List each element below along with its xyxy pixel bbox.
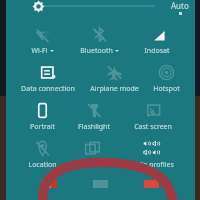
staticText: Flashlight [78, 122, 110, 132]
staticText: Data connection [21, 84, 75, 94]
button[interactable]: Airplane mode [90, 60, 139, 95]
staticText: Auto [171, 0, 189, 11]
button[interactable]: HotKnot [78, 136, 106, 171]
staticText: Location [28, 160, 57, 170]
staticText: Cast screen [134, 122, 172, 132]
staticText: Indosat [144, 46, 170, 56]
staticText: HotKnot [78, 160, 106, 170]
button[interactable]: Audio profiles [128, 136, 174, 171]
button[interactable]: Wi-Fi [31, 22, 54, 57]
button[interactable]: Hotspot [153, 60, 180, 95]
staticText: Airplane mode [90, 84, 139, 94]
button[interactable]: Indosat [144, 22, 170, 57]
button[interactable]: Battery saver [144, 180, 159, 188]
button[interactable]: Cast screen [134, 98, 172, 133]
button[interactable]: Brightness [32, 0, 45, 13]
button[interactable]: Flashlight [78, 98, 110, 133]
button[interactable]: Data connection [21, 60, 75, 95]
staticText: Portrait [30, 122, 55, 132]
button[interactable]: Bluetooth [80, 22, 119, 57]
staticText: Audio profiles [128, 160, 174, 170]
staticText: Wi-Fi [31, 46, 48, 56]
button[interactable]: Portrait [30, 98, 55, 133]
button[interactable]: Auto [171, 0, 189, 15]
button[interactable]: Screenshot [42, 180, 57, 188]
button[interactable]: Location [28, 136, 57, 171]
staticText: Hotspot [153, 84, 180, 94]
staticText: Bluetooth [80, 46, 113, 56]
